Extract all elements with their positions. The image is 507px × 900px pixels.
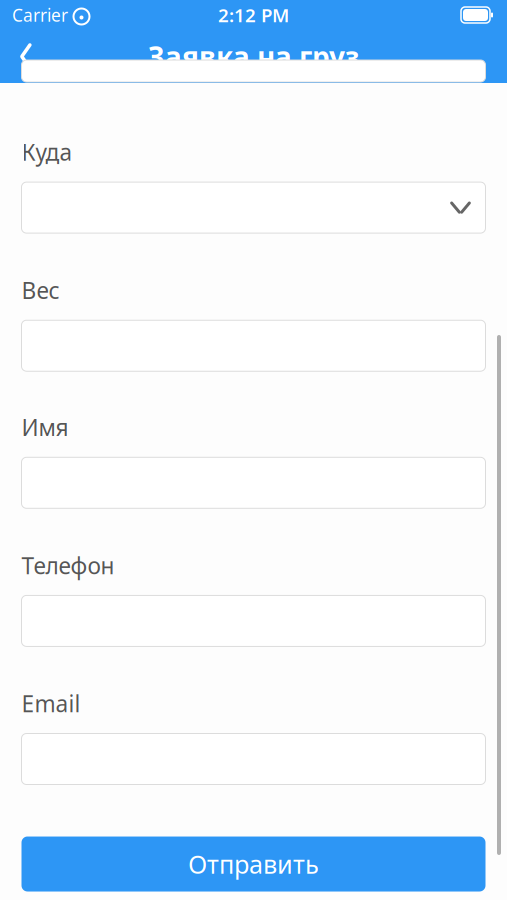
staticText: Телефон bbox=[21, 550, 114, 580]
staticText: Carrier bbox=[12, 3, 68, 26]
staticText: Email bbox=[21, 688, 80, 718]
staticText: Отправить bbox=[188, 847, 319, 881]
staticText: Заявка на груз bbox=[148, 38, 359, 75]
staticText: Вес bbox=[21, 275, 59, 305]
staticText: 2:12 PM bbox=[218, 3, 289, 27]
staticText: Имя bbox=[21, 412, 68, 442]
button[interactable]: Back bbox=[2, 32, 50, 80]
button[interactable]: Отправить bbox=[21, 836, 485, 891]
staticText: Куда bbox=[21, 137, 72, 167]
